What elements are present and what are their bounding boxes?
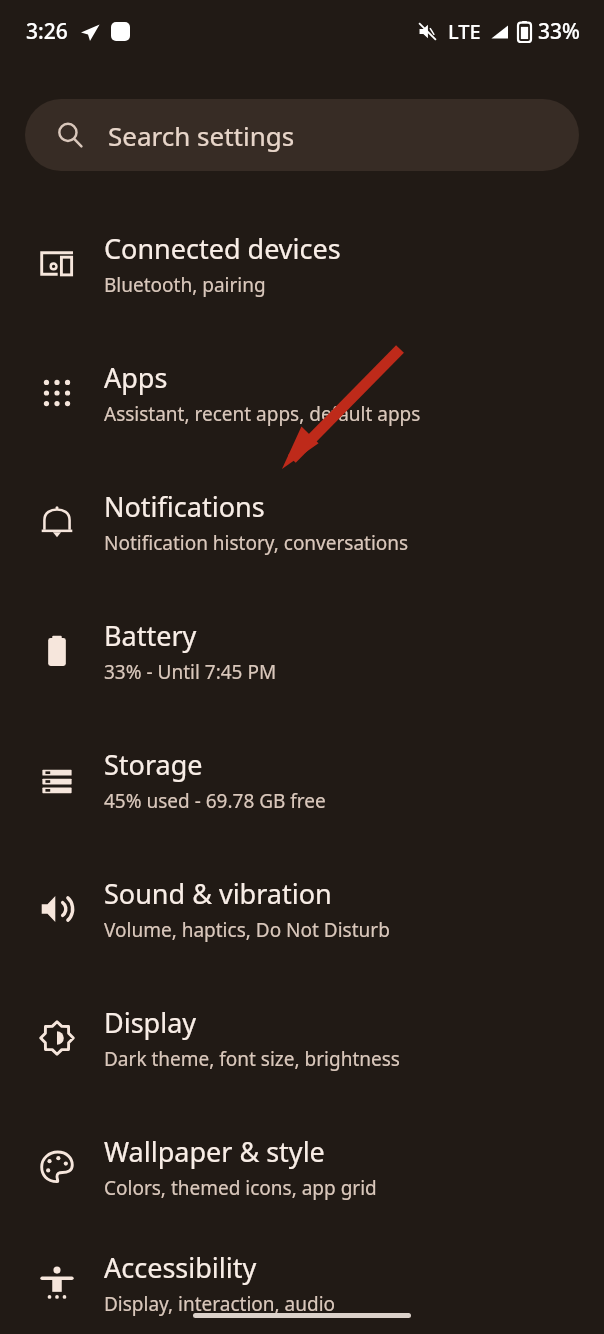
staticText: 33% - Until 7:45 PM <box>104 659 277 685</box>
staticText: Search settings <box>108 118 295 153</box>
staticText: Notification history, conversations <box>104 530 409 556</box>
staticText: Storage <box>104 746 203 783</box>
staticText: Bluetooth, pairing <box>104 272 266 298</box>
staticText: Apps <box>104 359 168 396</box>
staticText: Battery <box>104 617 197 654</box>
staticText: Assistant, recent apps, default apps <box>104 401 421 427</box>
button[interactable]: Storage <box>0 715 604 844</box>
button[interactable]: Accessibility <box>0 1231 604 1334</box>
button[interactable]: Sound <box>0 844 604 973</box>
staticText: Display, interaction, audio <box>104 1291 336 1317</box>
staticText: 45% used - 69.78 GB free <box>104 788 326 814</box>
button[interactable]: Apps <box>0 328 604 457</box>
staticText: Volume, haptics, Do Not Disturb <box>104 917 390 943</box>
staticText: Wallpaper & style <box>104 1133 325 1170</box>
button[interactable]: Connected devices <box>0 199 604 328</box>
staticText: 33% <box>538 17 580 46</box>
staticText: Dark theme, font size, brightness <box>104 1046 400 1072</box>
staticText: Notifications <box>104 488 265 525</box>
staticText: 3:26 <box>26 17 68 46</box>
staticText: Colors, themed icons, app grid <box>104 1175 377 1201</box>
button[interactable]: Notifications <box>0 457 604 586</box>
button[interactable]: Wallpaper <box>0 1102 604 1231</box>
staticText: Connected devices <box>104 230 341 267</box>
staticText: Accessibility <box>104 1249 257 1286</box>
button[interactable]: Display <box>0 973 604 1102</box>
staticText: Display <box>104 1004 197 1041</box>
button[interactable]: Search settings <box>25 99 579 171</box>
staticText: LTE <box>448 18 481 45</box>
staticText: Sound & vibration <box>104 875 332 912</box>
button[interactable]: Battery <box>0 586 604 715</box>
